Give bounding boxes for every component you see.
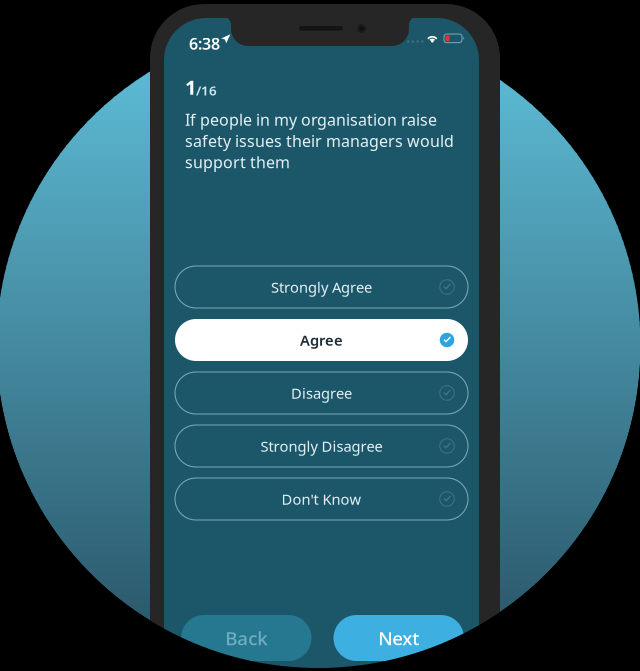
staticText: 1 — [185, 74, 196, 100]
staticText: support them — [185, 151, 290, 173]
staticText: 6:38 — [189, 33, 220, 54]
button[interactable]: Don't Know — [175, 478, 468, 520]
staticText: Disagree — [291, 383, 352, 403]
staticText: If people in my organisation raise — [185, 109, 437, 130]
staticText: Don't Know — [281, 489, 361, 509]
staticText: Next — [378, 626, 419, 650]
button[interactable]: Next — [333, 615, 464, 661]
staticText: /16 — [196, 82, 217, 99]
button[interactable]: Disagree — [175, 372, 468, 414]
staticText: Agree — [300, 330, 343, 350]
button[interactable]: Strongly Agree — [175, 266, 468, 308]
button[interactable]: Agree — [175, 319, 468, 361]
button[interactable]: Back — [181, 615, 311, 661]
staticText: Strongly Disagree — [260, 436, 382, 456]
staticText: Back — [225, 626, 267, 650]
button[interactable]: Strongly Disagree — [175, 425, 468, 467]
staticText: Strongly Agree — [271, 277, 372, 297]
staticText: safety issues their managers would — [185, 130, 454, 151]
